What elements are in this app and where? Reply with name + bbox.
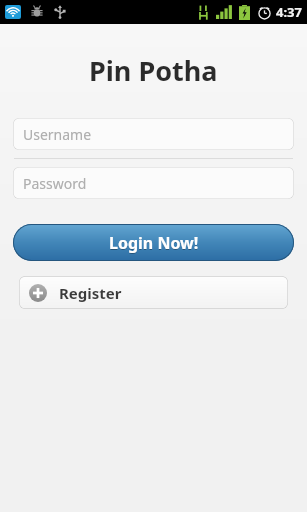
- staticText: Username: [23, 125, 92, 144]
- button[interactable]: Add: [19, 276, 288, 309]
- staticText: Login Now!: [109, 233, 199, 255]
- staticText: Pin Potha: [89, 52, 218, 89]
- staticText: Register: [59, 283, 122, 303]
- staticText: 4:37: [276, 3, 302, 21]
- button[interactable]: Password: [13, 167, 294, 199]
- staticText: Login Now!: [109, 232, 199, 254]
- staticText: Password: [23, 174, 87, 193]
- other: Add: [29, 284, 47, 302]
- button[interactable]: Login Now!: [13, 224, 294, 261]
- button[interactable]: Username: [13, 118, 294, 150]
